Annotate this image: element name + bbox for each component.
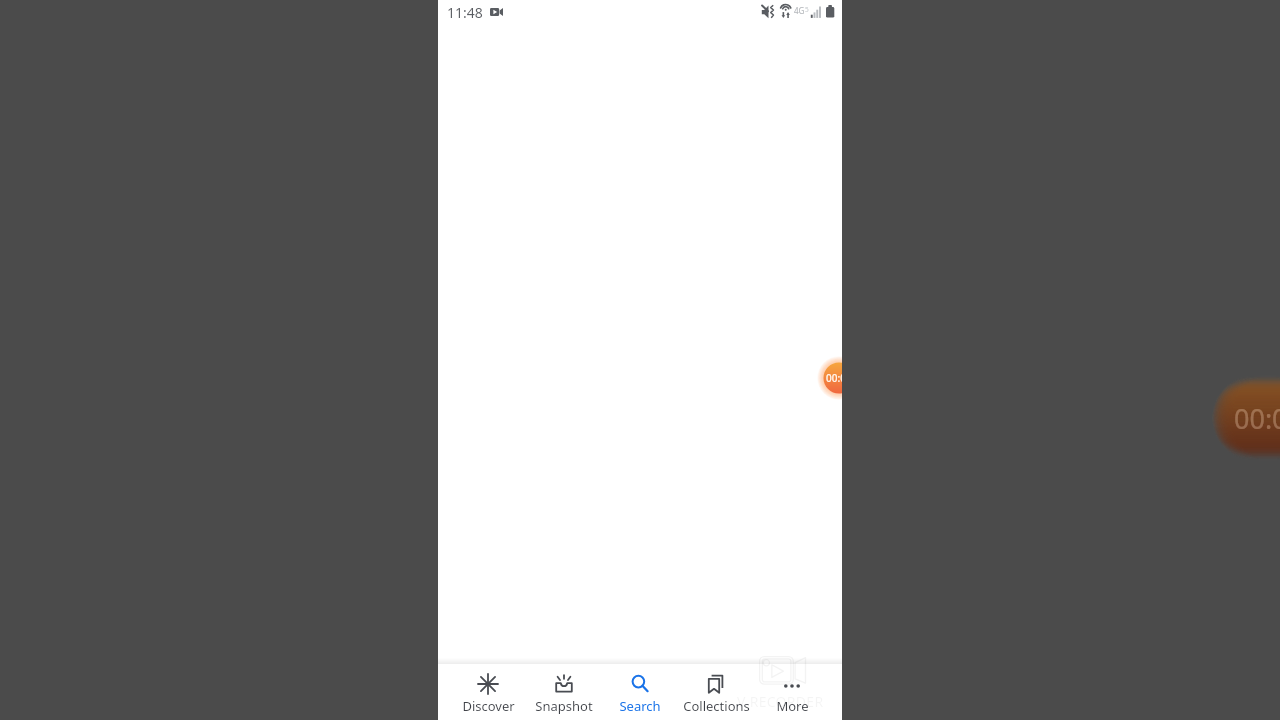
- button[interactable]: Discover: [450, 664, 526, 720]
- button[interactable]: Search: [602, 664, 678, 720]
- staticText: Search: [619, 697, 661, 715]
- staticText: V RECORDER: [737, 692, 824, 711]
- staticText: Discover: [462, 697, 515, 715]
- staticText: 00:08: [1234, 400, 1280, 437]
- staticText: 5: [805, 5, 809, 14]
- staticText: Snapshot: [535, 697, 593, 715]
- button[interactable]: Recording timer: [817, 356, 842, 400]
- staticText: 4G: [794, 5, 805, 16]
- staticText: Collections: [683, 697, 750, 715]
- staticText: More: [776, 697, 809, 715]
- staticText: 11:48: [447, 3, 483, 22]
- button[interactable]: Collections: [678, 664, 754, 720]
- button[interactable]: More: [754, 664, 830, 720]
- button[interactable]: Snapshot: [526, 664, 602, 720]
- staticText: 00:08: [826, 371, 842, 385]
